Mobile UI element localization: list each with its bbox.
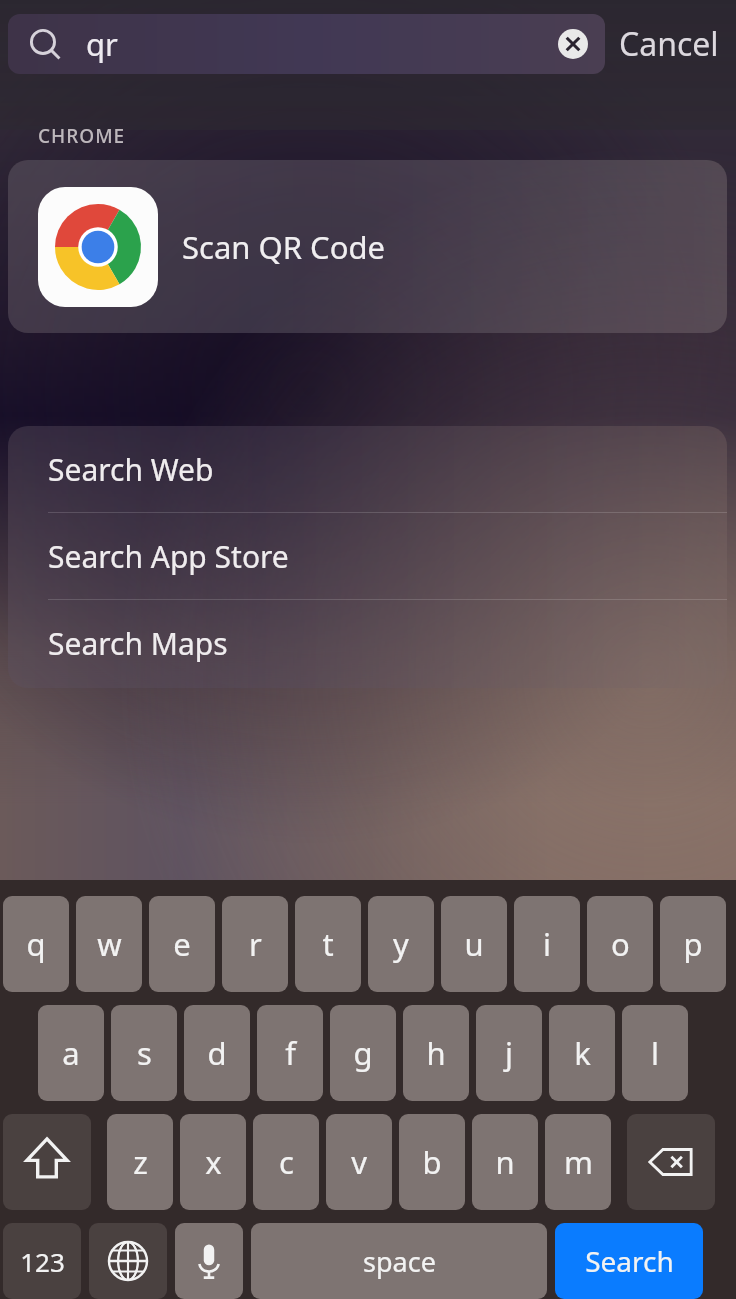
staticText: t	[322, 923, 334, 965]
staticText: f	[285, 1032, 296, 1074]
button[interactable]: b	[399, 1114, 465, 1210]
staticText: 123	[20, 1244, 65, 1279]
button[interactable]: Search App Store	[8, 513, 727, 600]
staticText: k	[574, 1032, 591, 1074]
button[interactable]: z	[107, 1114, 173, 1210]
button[interactable]: l	[622, 1005, 688, 1101]
button[interactable]: u	[441, 896, 507, 992]
staticText: b	[422, 1141, 442, 1183]
button[interactable]: y	[368, 896, 434, 992]
button[interactable]: s	[111, 1005, 177, 1101]
button[interactable]: o	[587, 896, 653, 992]
button[interactable]: v	[326, 1114, 392, 1210]
button[interactable]: 123	[3, 1223, 81, 1299]
button[interactable]: d	[184, 1005, 250, 1101]
button[interactable]: i	[514, 896, 580, 992]
staticText: n	[495, 1141, 515, 1183]
staticText: p	[683, 923, 703, 965]
staticText: d	[207, 1032, 227, 1074]
button[interactable]: Change keyboard	[89, 1223, 167, 1299]
staticText: m	[564, 1141, 593, 1183]
staticText: s	[137, 1032, 152, 1074]
button[interactable]: x	[180, 1114, 246, 1210]
button[interactable]: Scan QR Code	[8, 160, 727, 333]
button[interactable]: w	[76, 896, 142, 992]
staticText: c	[279, 1141, 294, 1183]
button[interactable]: p	[660, 896, 726, 992]
staticText: CHROME	[38, 123, 126, 149]
staticText: l	[651, 1032, 659, 1074]
staticText: h	[426, 1032, 446, 1074]
staticText: y	[393, 923, 409, 965]
staticText: o	[611, 923, 630, 965]
button[interactable]: Dictate	[175, 1223, 243, 1299]
button[interactable]: e	[149, 896, 215, 992]
staticText: Search App Store	[48, 536, 289, 577]
button[interactable]: Search	[555, 1223, 703, 1299]
button[interactable]: j	[476, 1005, 542, 1101]
button[interactable]: n	[472, 1114, 538, 1210]
staticText: Search	[585, 1242, 674, 1280]
staticText: Scan QR Code	[182, 226, 385, 268]
staticText: a	[62, 1032, 80, 1074]
button[interactable]: r	[222, 896, 288, 992]
staticText: z	[133, 1141, 148, 1183]
staticText: qr	[86, 23, 118, 65]
button[interactable]: g	[330, 1005, 396, 1101]
staticText: w	[97, 923, 122, 965]
button[interactable]: f	[257, 1005, 323, 1101]
button[interactable]: Cancel	[619, 14, 719, 74]
staticText: Search Maps	[48, 623, 228, 664]
button[interactable]: Clear text	[551, 22, 595, 66]
button[interactable]: Search Web	[8, 426, 727, 513]
staticText: Search Web	[48, 449, 214, 490]
button[interactable]: Shift	[3, 1114, 91, 1210]
button[interactable]: m	[545, 1114, 611, 1210]
button[interactable]: t	[295, 896, 361, 992]
button[interactable]: qr	[8, 14, 605, 74]
button[interactable]: c	[253, 1114, 319, 1210]
staticText: u	[464, 923, 484, 965]
staticText: j	[505, 1032, 513, 1074]
button[interactable]: h	[403, 1005, 469, 1101]
staticText: space	[363, 1243, 436, 1280]
staticText: e	[173, 923, 191, 965]
button[interactable]: a	[38, 1005, 104, 1101]
button[interactable]: space	[251, 1223, 547, 1299]
button[interactable]: q	[3, 896, 69, 992]
staticText: x	[205, 1141, 222, 1183]
button[interactable]: Backspace	[627, 1114, 715, 1210]
staticText: Cancel	[619, 22, 719, 66]
button[interactable]: Search Maps	[8, 600, 727, 687]
staticText: v	[351, 1141, 367, 1183]
button[interactable]: k	[549, 1005, 615, 1101]
staticText: r	[249, 923, 262, 965]
staticText: g	[353, 1032, 373, 1074]
staticText: q	[26, 923, 46, 965]
staticText: i	[543, 923, 551, 965]
